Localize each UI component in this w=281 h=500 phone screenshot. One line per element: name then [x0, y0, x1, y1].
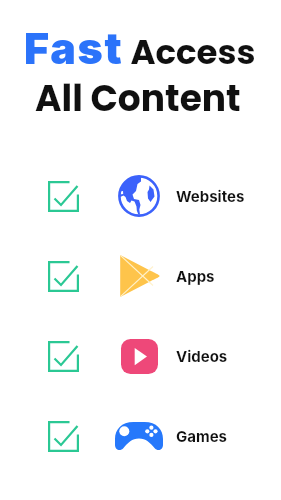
button[interactable]: Checked [40, 236, 250, 316]
button[interactable]: Checked [40, 396, 250, 476]
staticText: Fast Access [24, 22, 256, 76]
other: Checked [48, 181, 79, 212]
button[interactable]: Checked [40, 316, 250, 396]
other: Checked [48, 261, 79, 292]
staticText: Apps [176, 267, 215, 285]
staticText: All Content [35, 73, 241, 123]
staticText: Videos [176, 347, 228, 365]
other: Checked [48, 341, 79, 372]
staticText: Games [176, 427, 227, 445]
button[interactable]: Checked [40, 156, 250, 236]
staticText: Websites [176, 187, 245, 205]
other: Checked [48, 421, 79, 452]
